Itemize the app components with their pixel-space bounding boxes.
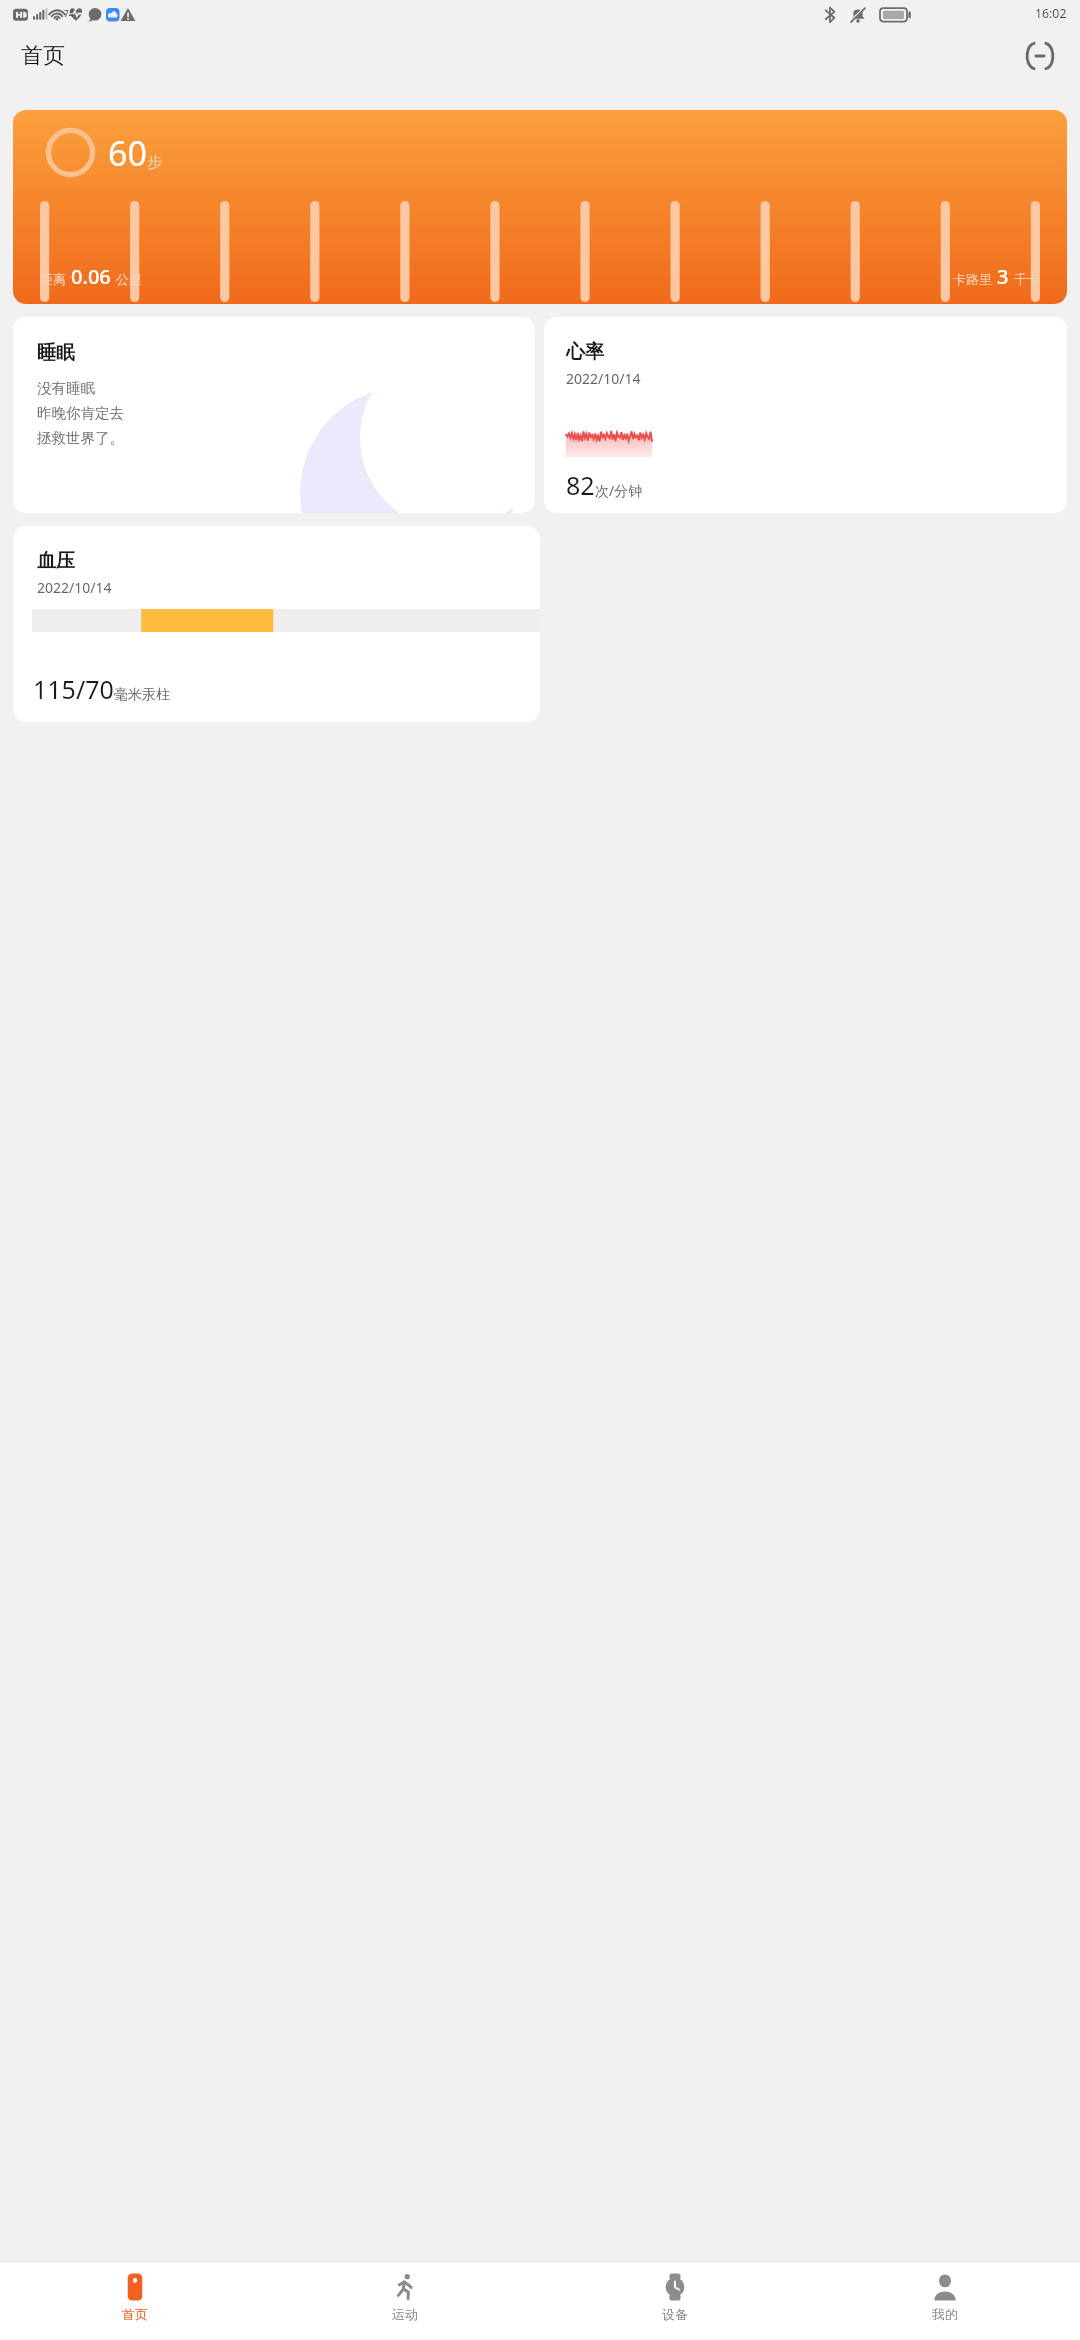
staticText: 74 (64, 8, 74, 19)
staticText: 拯救世界了。 (37, 429, 124, 447)
staticText: 我的 (932, 2306, 958, 2322)
staticText: 60 (108, 130, 147, 176)
staticText: 毫米汞柱 (114, 686, 170, 704)
staticText: 千卡 (1014, 271, 1040, 287)
button[interactable]: 血压 (13, 526, 540, 722)
staticText: 没有睡眠 (37, 379, 95, 397)
staticText: 公里 (116, 271, 142, 287)
staticText: 首页 (21, 42, 65, 70)
staticText: 16:02 (1035, 5, 1067, 22)
staticText: 115/70 (33, 672, 114, 706)
staticText: 2022/10/14 (37, 578, 112, 597)
staticText: 0.06 (71, 263, 111, 290)
staticText: 设备 (662, 2306, 688, 2322)
staticText: 昨晚你肯定去 (37, 404, 124, 422)
staticText: 3 (997, 263, 1009, 290)
button[interactable]: 首页 (0, 2262, 270, 2340)
staticText: 步 (147, 153, 162, 172)
button[interactable]: 睡眠 (13, 317, 535, 513)
staticText: 82 (566, 468, 595, 502)
button[interactable]: 设备 (540, 2262, 810, 2340)
staticText: 运动 (392, 2306, 418, 2322)
staticText: 睡眠 (37, 341, 75, 365)
staticText: 首页 (122, 2306, 148, 2322)
staticText: 距离 (40, 271, 66, 287)
staticText: 2022/10/14 (566, 369, 641, 388)
staticText: 心率 (566, 340, 604, 364)
staticText: 次/分钟 (595, 481, 643, 500)
button[interactable]: 运动 (270, 2262, 540, 2340)
staticText: 血压 (37, 549, 75, 573)
button[interactable]: 连接设备 (1018, 34, 1062, 78)
staticText: 卡路里 (953, 271, 992, 287)
button[interactable]: 心率 (544, 317, 1067, 513)
button[interactable]: 60 (13, 110, 1067, 304)
button[interactable]: 我的 (810, 2262, 1080, 2340)
